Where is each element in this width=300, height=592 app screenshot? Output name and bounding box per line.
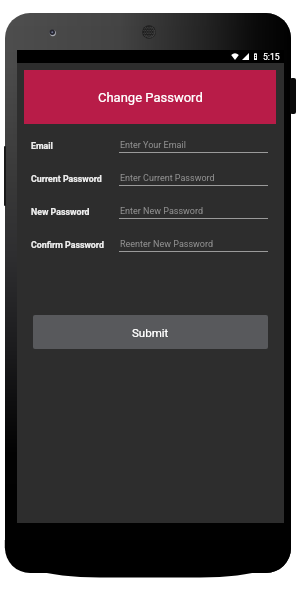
button[interactable]: Confirm Password bbox=[17, 228, 284, 261]
button[interactable]: Current Password bbox=[17, 162, 284, 195]
other: Wi-Fi signal bbox=[231, 53, 239, 60]
staticText: Enter Current Password bbox=[120, 173, 215, 184]
button[interactable]: Submit bbox=[33, 315, 268, 349]
staticText: Enter Your Email bbox=[120, 140, 186, 151]
button[interactable]: Email bbox=[17, 129, 284, 162]
staticText: Confirm Password bbox=[31, 240, 104, 250]
other: Cellular signal bbox=[242, 53, 249, 60]
staticText: Enter New Password bbox=[120, 206, 204, 217]
staticText: Email bbox=[31, 141, 53, 151]
staticText: Change Password bbox=[98, 90, 203, 105]
staticText: Submit bbox=[132, 326, 169, 339]
button[interactable]: New Password bbox=[17, 195, 284, 228]
staticText: Reenter New Password bbox=[120, 239, 214, 250]
other: Battery bbox=[254, 53, 257, 60]
staticText: 5:15 bbox=[263, 52, 280, 62]
staticText: Current Password bbox=[31, 174, 102, 184]
staticText: New Password bbox=[31, 207, 90, 217]
button[interactable]: Change Password bbox=[24, 70, 276, 124]
